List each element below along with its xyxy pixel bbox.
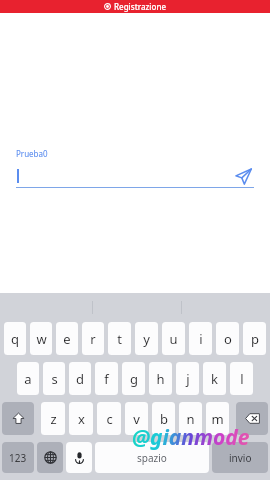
button[interactable]: j <box>176 362 199 395</box>
button[interactable]: Cambia lingua <box>37 442 63 473</box>
button[interactable]: f <box>95 362 118 395</box>
button[interactable]: b <box>152 402 175 435</box>
button[interactable]: q <box>4 322 26 355</box>
staticText: 123 <box>9 451 27 465</box>
staticText: k <box>211 370 218 388</box>
staticText: s <box>51 370 58 388</box>
button[interactable]: e <box>56 322 78 355</box>
staticText: r <box>90 330 96 348</box>
button[interactable]: x <box>69 402 93 435</box>
staticText: i <box>199 330 203 348</box>
staticText: v <box>133 410 140 428</box>
button[interactable]: 123 <box>2 442 34 473</box>
button[interactable]: r <box>82 322 104 355</box>
button[interactable]: d <box>69 362 91 395</box>
staticText: j <box>186 370 190 388</box>
button[interactable]: w <box>30 322 52 355</box>
button[interactable]: z <box>41 402 65 435</box>
button[interactable]: n <box>179 402 202 435</box>
button[interactable]: h <box>149 362 172 395</box>
staticText: spazio <box>137 451 167 465</box>
button[interactable]: invio <box>212 442 268 473</box>
button[interactable]: Registrazione in corso <box>0 0 270 13</box>
staticText: o <box>224 330 232 348</box>
button[interactable]: s <box>43 362 65 395</box>
staticText: w <box>36 330 47 348</box>
button[interactable]: y <box>135 322 158 355</box>
staticText: d <box>76 370 84 388</box>
staticText: m <box>211 410 224 428</box>
staticText: y <box>143 330 150 348</box>
staticText: g <box>130 370 138 388</box>
button[interactable]: k <box>203 362 226 395</box>
button[interactable]: c <box>97 402 121 435</box>
button[interactable]: Dettatura vocale <box>66 442 92 473</box>
button[interactable]: Maiuscole <box>2 402 34 435</box>
staticText: x <box>78 410 85 428</box>
button[interactable]: o <box>216 322 239 355</box>
staticText: e <box>63 330 71 348</box>
button[interactable]: l <box>230 362 253 395</box>
staticText: n <box>186 410 195 428</box>
staticText: u <box>169 330 178 348</box>
staticText: a <box>24 370 32 388</box>
staticText: q <box>11 330 19 348</box>
button[interactable]: a <box>17 362 39 395</box>
staticText: z <box>50 410 57 428</box>
staticText: b <box>160 410 168 428</box>
button[interactable]: p <box>243 322 266 355</box>
button[interactable]: Invia <box>16 164 254 187</box>
button[interactable]: u <box>162 322 185 355</box>
staticText: Registrazione <box>114 1 166 12</box>
button[interactable]: spazio <box>95 442 209 473</box>
button[interactable]: m <box>206 402 229 435</box>
button[interactable]: g <box>122 362 145 395</box>
staticText: p <box>251 330 259 348</box>
button[interactable]: i <box>189 322 212 355</box>
button[interactable]: t <box>108 322 131 355</box>
staticText: @gianmode <box>132 423 250 452</box>
button[interactable]: v <box>125 402 148 435</box>
button[interactable]: Invia <box>232 165 254 187</box>
staticText: c <box>106 410 113 428</box>
staticText: h <box>156 370 165 388</box>
staticText: invio <box>229 451 252 465</box>
staticText: f <box>104 370 109 388</box>
staticText: l <box>240 370 244 388</box>
staticText: t <box>117 330 122 348</box>
staticText: Prueba0 <box>16 148 48 159</box>
button[interactable]: Cancella <box>236 402 268 435</box>
